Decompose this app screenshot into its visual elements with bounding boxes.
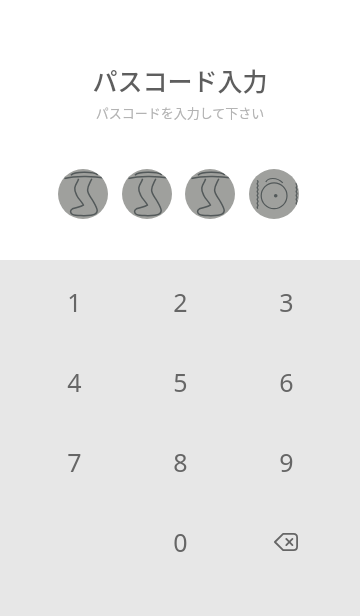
staticText: 8 [173,445,188,479]
staticText: 4 [67,365,82,399]
button[interactable]: 6 [233,342,339,422]
button[interactable]: 7 [21,422,127,502]
staticText: 7 [67,445,82,479]
staticText: 2 [173,285,188,319]
button[interactable]: 0 [127,502,233,582]
staticText: 1 [67,285,82,319]
staticText: パスコードを入力して下さい [0,103,360,122]
button[interactable]: 4 [21,342,127,422]
button[interactable]: 1 [21,262,127,342]
staticText: 3 [279,285,294,319]
staticText: パスコード入力 [0,62,360,98]
button[interactable]: 8 [127,422,233,502]
button[interactable]: 3 [233,262,339,342]
staticText: 5 [173,365,188,399]
staticText: 9 [279,445,294,479]
button[interactable]: 2 [127,262,233,342]
staticText: 0 [173,525,188,559]
button[interactable]: 5 [127,342,233,422]
button[interactable]: 9 [233,422,339,502]
button[interactable]: Delete [233,502,339,582]
staticText: 6 [279,365,294,399]
